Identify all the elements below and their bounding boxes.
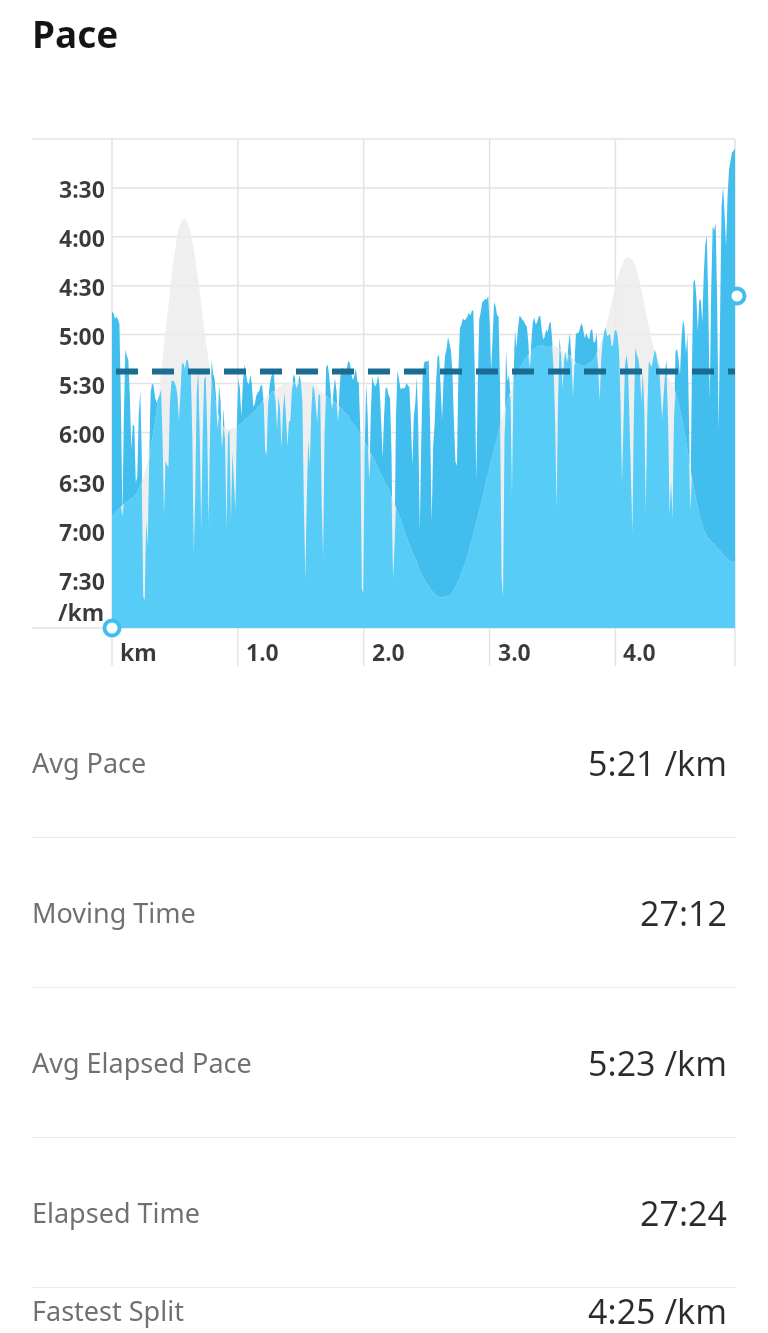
button[interactable]: Avg Pace	[0, 688, 768, 837]
staticText: 4.0	[623, 636, 656, 667]
staticText: 5:23 /km	[588, 1040, 727, 1086]
staticText: 4:25 /km	[588, 1288, 727, 1333]
staticText: 4:00	[59, 222, 105, 253]
staticText: Fastest Split	[32, 1292, 184, 1329]
staticText: 3:30	[59, 173, 105, 204]
staticText: 1.0	[246, 636, 279, 667]
staticText: 27:24	[640, 1190, 727, 1236]
staticText: 3.0	[498, 636, 531, 667]
staticText: 7:00	[59, 516, 105, 547]
button[interactable]: Moving Time	[0, 837, 768, 987]
staticText: /km	[58, 596, 105, 627]
staticText: 4:30	[59, 271, 105, 302]
staticText: Avg Pace	[32, 744, 147, 781]
button[interactable]: Fastest Split	[0, 1287, 768, 1333]
staticText: 2.0	[372, 636, 405, 667]
staticText: Moving Time	[32, 894, 196, 931]
button[interactable]: Avg Elapsed Pace	[0, 987, 768, 1137]
staticText: km	[120, 636, 157, 667]
staticText: 27:12	[640, 890, 727, 936]
staticText: 5:00	[59, 320, 105, 351]
staticText: 6:30	[59, 467, 105, 498]
staticText: Avg Elapsed Pace	[32, 1044, 252, 1081]
staticText: 5:30	[59, 369, 105, 400]
staticText: 6:00	[59, 418, 105, 449]
staticText: Pace	[32, 8, 119, 58]
staticText: Elapsed Time	[32, 1194, 200, 1231]
staticText: 5:21 /km	[588, 740, 727, 786]
staticText: 7:30	[59, 565, 105, 596]
button[interactable]: Elapsed Time	[0, 1137, 768, 1287]
